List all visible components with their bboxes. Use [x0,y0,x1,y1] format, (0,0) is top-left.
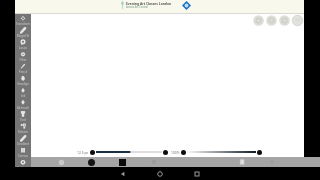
button[interactable]: Back [117,168,129,180]
button[interactable]: 100% [171,147,262,157]
button[interactable]: Transform [15,14,31,26]
button[interactable]: Filter [15,50,31,62]
button[interactable]: Airbrush [15,98,31,110]
button[interactable]: Brush [88,159,95,166]
button[interactable]: Evening Art Classes London [15,0,304,13]
button[interactable]: Canvas [15,146,31,158]
button[interactable]: 12.5 px [77,147,168,157]
button[interactable]: Pattern [15,122,31,134]
staticText: MagicFill [15,34,31,38]
button[interactable]: Lasso [15,38,31,50]
button[interactable]: MagicFill [15,26,31,38]
staticText: Access Art Central [126,5,148,9]
button[interactable]: Settings [15,158,31,167]
staticText: Transform [15,22,31,26]
staticText: Airbrush [15,106,31,110]
staticText: Canvas [15,154,31,158]
staticText: Pencil [15,70,31,74]
button[interactable]: Ink [15,86,31,98]
button[interactable]: Gradient [15,134,31,146]
button[interactable]: More options [292,15,303,26]
staticText: Ink [15,94,31,98]
staticText: Lasso [15,46,31,50]
staticText: Evening Art Classes London [126,1,172,5]
button[interactable]: Home [154,168,166,180]
button[interactable]: Undo [253,15,264,26]
button[interactable]: Palette [150,158,158,166]
staticText: 12.5 px [77,150,89,154]
button[interactable]: Redo [266,15,277,26]
button[interactable]: Brush preview [57,158,66,167]
staticText: Filter [15,58,31,62]
staticText: Smudge [15,82,31,86]
staticText: Settings [15,166,31,170]
staticText: 100% [171,150,180,154]
button[interactable]: Layers [238,158,246,166]
staticText: Text [15,118,31,122]
button[interactable]: Pencil [15,62,31,74]
button[interactable]: Smudge [15,74,31,86]
button[interactable]: Layers [279,15,290,26]
button[interactable]: Recents [191,168,203,180]
staticText: Pattern [15,130,31,134]
button[interactable]: Ad information [182,1,191,10]
button[interactable]: Text [15,110,31,122]
staticText: Gradient [15,142,31,146]
